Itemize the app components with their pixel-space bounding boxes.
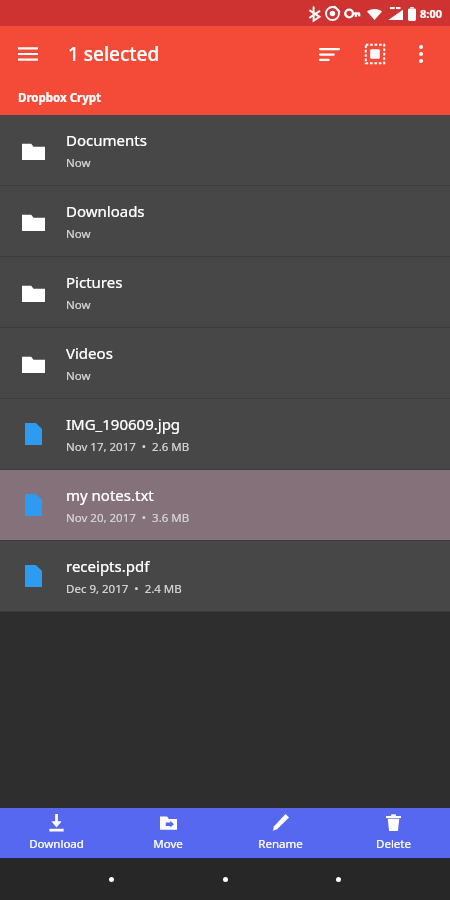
- button[interactable]: Download: [0, 808, 112, 858]
- button[interactable]: More options: [398, 31, 444, 77]
- button[interactable]: Delete: [337, 808, 450, 858]
- button[interactable]: receipts.pdf: [0, 541, 450, 611]
- staticText: IMG_190609.jpg: [66, 414, 181, 434]
- staticText: Now: [66, 297, 91, 313]
- staticText: Delete: [376, 836, 411, 852]
- staticText: 1 selected: [68, 41, 160, 67]
- staticText: Now: [66, 155, 91, 171]
- button[interactable]: Pictures: [0, 257, 450, 327]
- staticText: Now: [66, 368, 91, 384]
- button[interactable]: IMG_190609.jpg: [0, 399, 450, 469]
- staticText: receipts.pdf: [66, 556, 150, 576]
- staticText: Documents: [66, 130, 147, 150]
- button[interactable]: Select all: [352, 31, 398, 77]
- button[interactable]: Rename: [224, 808, 337, 858]
- staticText: Nov 20, 2017 • 3.6 MB: [66, 510, 190, 526]
- button[interactable]: Open navigation drawer: [6, 32, 50, 76]
- staticText: Download: [29, 836, 84, 852]
- staticText: Rename: [258, 836, 303, 852]
- button[interactable]: Videos: [0, 328, 450, 398]
- staticText: Pictures: [66, 272, 123, 292]
- button[interactable]: Downloads: [0, 186, 450, 256]
- button[interactable]: Sort: [306, 31, 352, 77]
- button[interactable]: Documents: [0, 115, 450, 185]
- staticText: 8:00: [420, 6, 442, 21]
- button[interactable]: my notes.txt: [0, 470, 450, 540]
- staticText: Nov 17, 2017 • 2.6 MB: [66, 439, 190, 455]
- staticText: Downloads: [66, 201, 145, 221]
- button[interactable]: Move: [112, 808, 224, 858]
- staticText: Move: [153, 836, 183, 852]
- staticText: Videos: [66, 343, 113, 363]
- staticText: Now: [66, 226, 91, 242]
- staticText: Dropbox Crypt: [18, 90, 101, 106]
- staticText: Dec 9, 2017 • 2.4 MB: [66, 581, 182, 597]
- staticText: my notes.txt: [66, 485, 154, 505]
